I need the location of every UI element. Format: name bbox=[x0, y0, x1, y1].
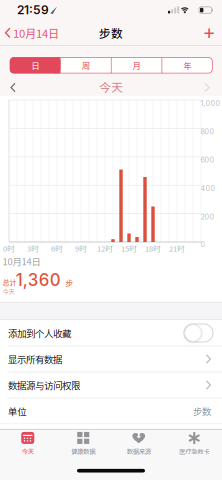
staticText: 400 bbox=[200, 184, 215, 193]
button[interactable]: 日 bbox=[10, 57, 60, 73]
staticText: 步数 bbox=[193, 404, 211, 418]
button[interactable]: 数据源与访问权限 bbox=[0, 372, 222, 398]
staticText: 数据源与访问权限 bbox=[8, 378, 80, 392]
staticText: 800 bbox=[200, 127, 214, 136]
button[interactable]: 显示所有数据 bbox=[0, 346, 222, 372]
button[interactable]: 单位 bbox=[0, 398, 222, 424]
button[interactable]: 医疗急救卡 bbox=[167, 431, 221, 457]
staticText: 18时 bbox=[145, 243, 161, 254]
staticText: 显示所有数据 bbox=[8, 352, 62, 366]
staticText: 今天 bbox=[99, 78, 123, 95]
staticText: 0 bbox=[200, 240, 205, 249]
button[interactable]: 月 bbox=[111, 57, 162, 73]
staticText: 21:59 bbox=[17, 3, 49, 17]
button[interactable]: 周 bbox=[60, 57, 111, 73]
staticText: 周 bbox=[82, 59, 90, 71]
staticText: 月 bbox=[133, 59, 141, 71]
staticText: 健康数据 bbox=[71, 446, 95, 456]
staticText: 今天 bbox=[2, 287, 14, 296]
staticText: + bbox=[202, 20, 215, 44]
staticText: 0时 bbox=[3, 243, 15, 254]
staticText: 数据来源 bbox=[127, 446, 151, 456]
button[interactable]: 今天 bbox=[1, 431, 55, 457]
staticText: 600 bbox=[200, 156, 214, 164]
staticText: 10月14日 bbox=[2, 254, 40, 268]
staticText: 步 bbox=[65, 277, 73, 288]
staticText: 3时 bbox=[27, 243, 39, 254]
staticText: 步数 bbox=[99, 24, 123, 41]
staticText: 1,360 bbox=[16, 270, 61, 290]
staticText: 总计 bbox=[2, 277, 16, 287]
button[interactable]: 数据来源 bbox=[112, 431, 166, 457]
staticText: 1,000 bbox=[200, 99, 220, 108]
staticText: 9时 bbox=[75, 243, 87, 254]
staticText: 200 bbox=[200, 212, 214, 221]
staticText: 10月14日 bbox=[13, 25, 59, 41]
staticText: 日 bbox=[31, 59, 39, 71]
staticText: 今天 bbox=[22, 446, 34, 456]
button[interactable]: 添加数据 bbox=[199, 22, 219, 42]
staticText: 15时 bbox=[121, 243, 137, 254]
staticText: 添加到个人收藏 bbox=[8, 326, 71, 340]
staticText: 6时 bbox=[51, 243, 63, 254]
staticText: 21时 bbox=[169, 243, 185, 254]
button[interactable]: 后一天 bbox=[200, 79, 214, 95]
staticText: 12时 bbox=[97, 243, 113, 254]
staticText: 医疗急救卡 bbox=[179, 446, 209, 456]
staticText: 单位 bbox=[8, 404, 26, 418]
button[interactable]: 10月14日 bbox=[5, 22, 85, 44]
button[interactable]: 年 bbox=[162, 57, 213, 73]
staticText: 年 bbox=[183, 59, 191, 71]
button[interactable]: 健康数据 bbox=[56, 431, 110, 457]
button[interactable]: 添加到个人收藏 bbox=[184, 324, 213, 342]
button[interactable]: 前一天 bbox=[6, 79, 20, 95]
